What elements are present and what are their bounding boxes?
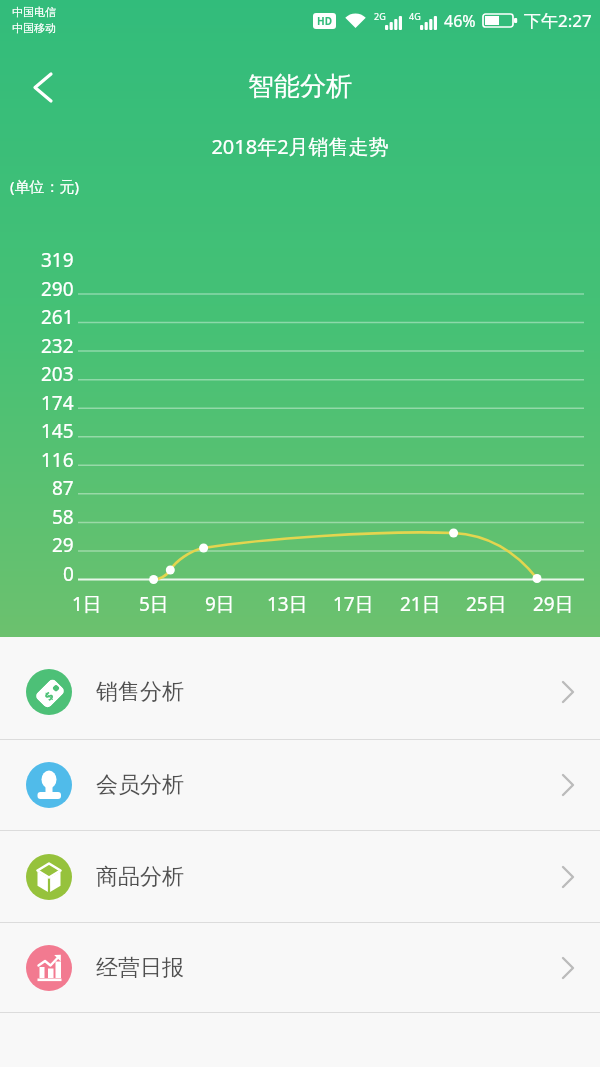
staticText: 319 [41, 247, 74, 273]
staticText: 174 [41, 390, 74, 416]
staticText: 17日 [333, 591, 374, 617]
staticText: 1日 [72, 591, 102, 617]
staticText: 145 [41, 418, 74, 444]
button[interactable]: 会员分析 [0, 740, 600, 830]
button[interactable]: 经营日报 [0, 923, 600, 1012]
staticText: 232 [41, 333, 74, 359]
staticText: 经营日报 [96, 954, 184, 982]
staticText: 智能分析 [0, 70, 600, 103]
staticText: 商品分析 [96, 863, 184, 891]
staticText: 25日 [466, 591, 507, 617]
staticText: 87 [52, 475, 74, 501]
staticText: 0 [63, 561, 74, 587]
staticText: 会员分析 [96, 771, 184, 799]
staticText: 261 [41, 304, 74, 330]
staticText: 116 [41, 447, 74, 473]
staticText: 2G [374, 10, 386, 22]
staticText: 21日 [400, 591, 441, 617]
staticText: 29 [52, 532, 74, 558]
staticText: HD [317, 14, 332, 28]
button[interactable] [24, 68, 64, 108]
staticText: 4G [409, 10, 421, 22]
staticText: 58 [52, 504, 74, 530]
button[interactable]: 商品分析 [0, 831, 600, 922]
staticText: 203 [41, 361, 74, 387]
staticText: 9日 [205, 591, 235, 617]
staticText: 下午2:27 [524, 9, 592, 32]
staticText: 2018年2月销售走势 [0, 133, 600, 160]
staticText: 13日 [267, 591, 308, 617]
button[interactable]: $ [0, 637, 600, 739]
staticText: 5日 [139, 591, 169, 617]
staticText: (单位：元) [10, 176, 80, 196]
staticText: $ [40, 687, 57, 704]
staticText: 销售分析 [96, 678, 184, 706]
staticText: 29日 [533, 591, 574, 617]
staticText: 中国电信 [12, 5, 56, 19]
staticText: 290 [41, 276, 74, 302]
staticText: 中国移动 [12, 21, 56, 35]
staticText: 46% [444, 10, 476, 32]
